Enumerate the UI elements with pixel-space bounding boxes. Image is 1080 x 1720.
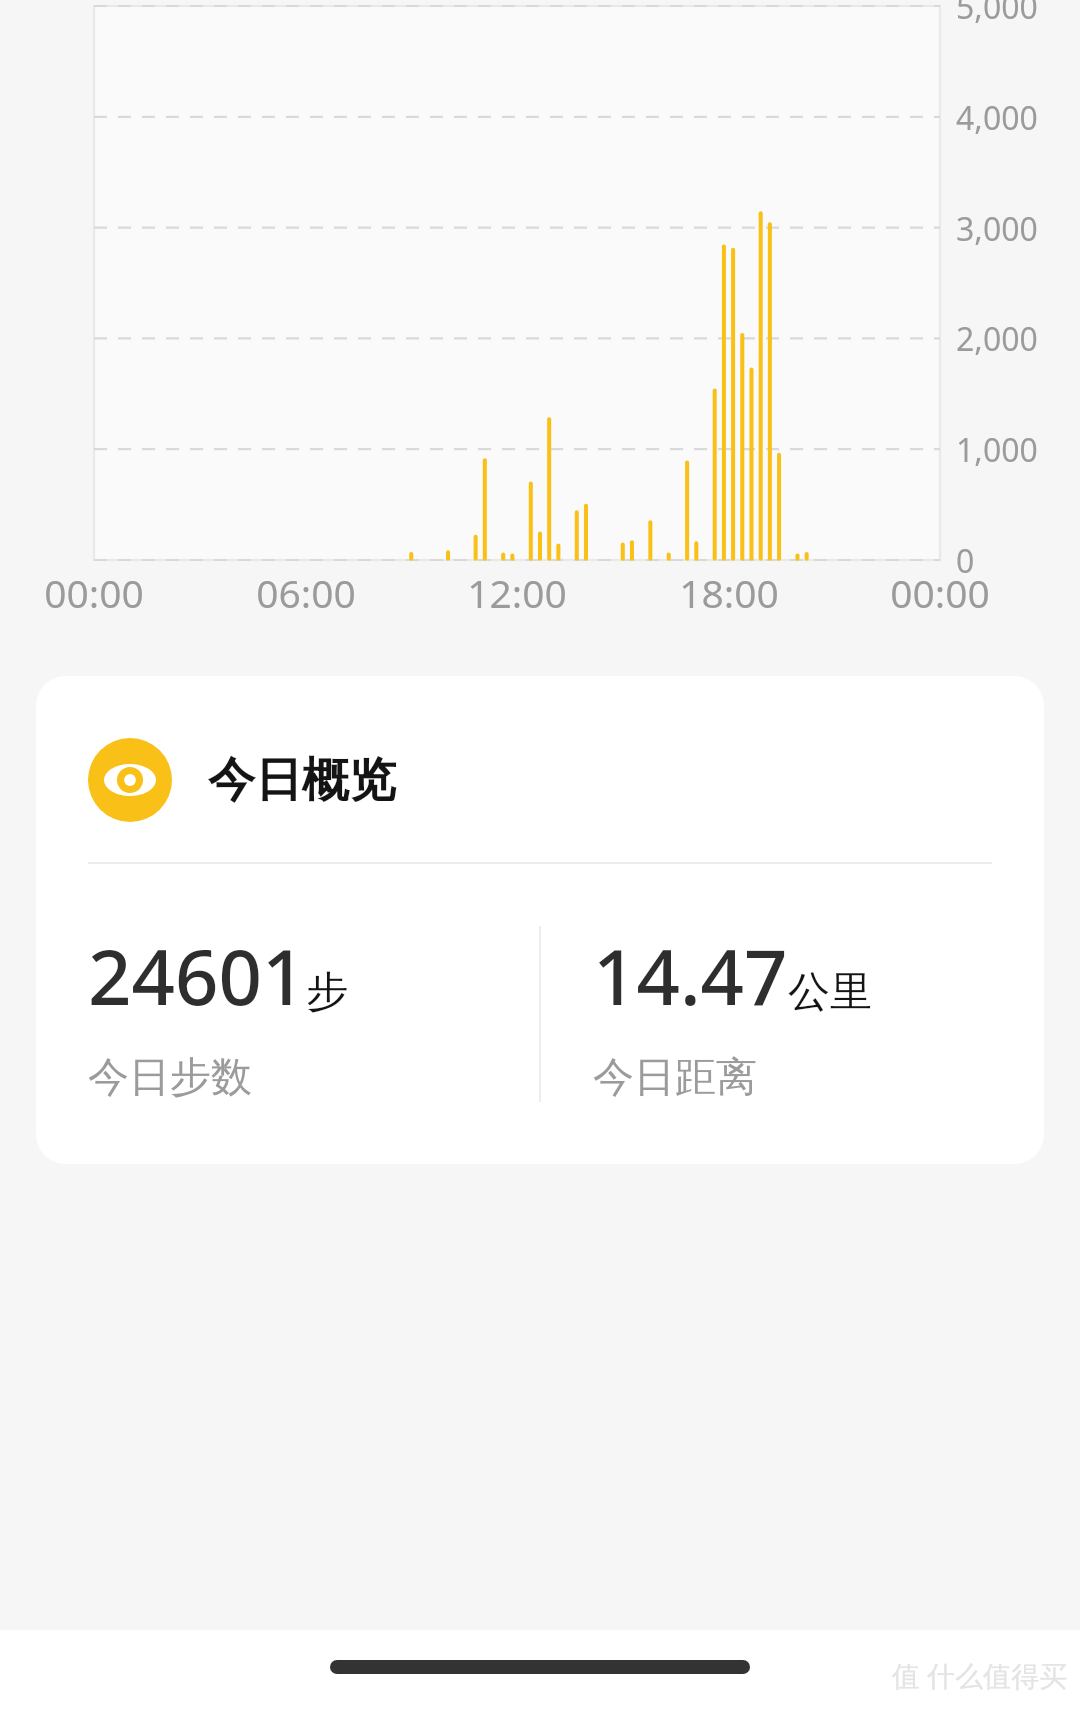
- staticText: 1,000: [956, 428, 1038, 472]
- button[interactable]: Today overview: [36, 676, 1044, 1164]
- staticText: 3,000: [956, 207, 1038, 251]
- staticText: 今日概览: [208, 751, 396, 810]
- staticText: 14.47: [593, 924, 788, 1028]
- staticText: 值 什么值得买: [892, 1656, 1068, 1694]
- staticText: 00:00: [44, 566, 144, 619]
- other: Today overview: [88, 738, 172, 822]
- staticText: 今日步数: [88, 1052, 252, 1104]
- staticText: 0: [956, 539, 975, 583]
- staticText: 今日距离: [593, 1052, 757, 1104]
- staticText: 18:00: [679, 566, 779, 619]
- staticText: 5,000: [956, 0, 1038, 29]
- staticText: 4,000: [956, 96, 1038, 140]
- staticText: 24601: [88, 924, 306, 1028]
- staticText: 2,000: [956, 317, 1038, 361]
- staticText: 12:00: [467, 566, 567, 619]
- staticText: 公里: [788, 966, 872, 1019]
- staticText: 06:00: [256, 566, 356, 619]
- staticText: 步: [306, 966, 348, 1019]
- staticText: 00:00: [890, 566, 990, 619]
